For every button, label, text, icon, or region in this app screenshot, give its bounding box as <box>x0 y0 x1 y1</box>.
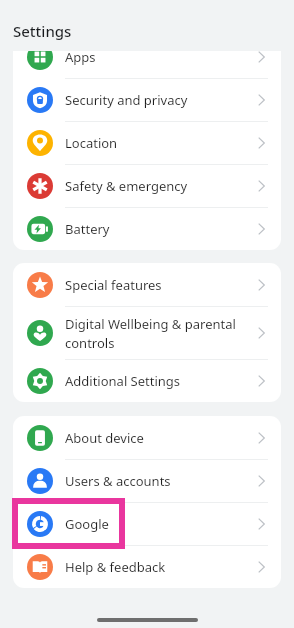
button[interactable]: Apps <box>13 35 281 78</box>
button[interactable]: Security and privacy <box>13 78 281 121</box>
button[interactable]: Users & accounts <box>13 459 281 502</box>
staticText: Special features <box>65 276 252 294</box>
staticText: Help & feedback <box>65 558 252 576</box>
button[interactable]: Google <box>13 502 281 545</box>
staticText: Digital Wellbeing & parental controls <box>65 315 252 351</box>
button[interactable]: Battery <box>13 207 281 250</box>
staticText: Location <box>65 134 252 152</box>
button[interactable]: Special features <box>13 263 281 306</box>
staticText: Battery <box>65 220 252 238</box>
staticText: Safety & emergency <box>65 177 252 195</box>
button[interactable]: Location <box>13 121 281 164</box>
button[interactable]: Digital Wellbeing & parental controls <box>13 306 281 359</box>
staticText: About device <box>65 429 252 447</box>
button[interactable]: Additional Settings <box>13 359 281 402</box>
staticText: Security and privacy <box>65 91 252 109</box>
staticText: Google <box>65 515 252 533</box>
staticText: Additional Settings <box>65 372 252 390</box>
button[interactable]: Help & feedback <box>13 545 281 588</box>
staticText: Users & accounts <box>65 472 252 490</box>
staticText: Settings <box>13 21 72 41</box>
staticText: Apps <box>65 48 252 66</box>
button[interactable]: About device <box>13 416 281 459</box>
button[interactable]: Safety & emergency <box>13 164 281 207</box>
